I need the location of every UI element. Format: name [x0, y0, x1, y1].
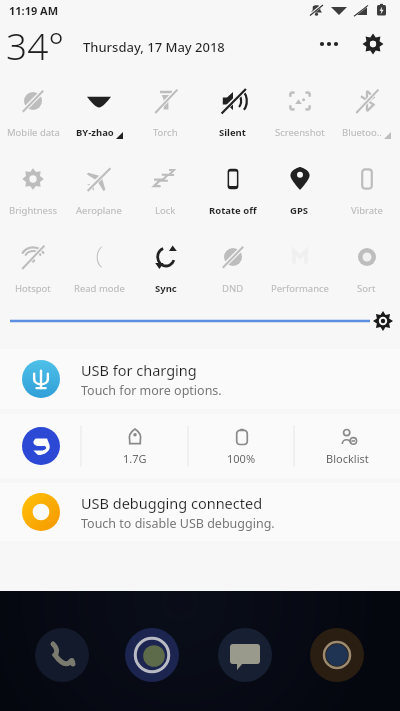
- staticText: Silent: [219, 126, 246, 139]
- button[interactable]: Brightness: [0, 152, 66, 230]
- button[interactable]: USB for charging: [0, 349, 400, 409]
- staticText: GPS: [290, 204, 309, 217]
- staticText: Lock: [155, 204, 176, 217]
- staticText: Hotspot: [15, 282, 51, 295]
- staticText: Torch: [153, 126, 178, 139]
- staticText: Sync: [155, 282, 177, 295]
- button[interactable]: Rotate off: [199, 152, 266, 230]
- button[interactable]: 1.7G: [0, 414, 400, 478]
- button[interactable]: DND: [199, 230, 266, 304]
- staticText: Vibrate: [351, 204, 383, 217]
- button[interactable]: Aeroplane: [66, 152, 132, 230]
- button[interactable]: More options: [312, 27, 346, 61]
- staticText: Rotate off: [209, 204, 257, 217]
- button[interactable]: Bluetoo..: [333, 74, 400, 152]
- staticText: USB for charging: [81, 360, 197, 380]
- button[interactable]: Torch: [132, 74, 199, 152]
- button[interactable]: Screenshot: [266, 74, 333, 152]
- staticText: Performance: [271, 282, 329, 295]
- staticText: Blocklist: [326, 451, 369, 466]
- staticText: USB debugging connected: [81, 493, 263, 513]
- button[interactable]: Sync: [132, 230, 199, 304]
- button[interactable]: Vibrate: [333, 152, 400, 230]
- button[interactable]: Lock: [132, 152, 199, 230]
- staticText: Screenshot: [275, 126, 325, 139]
- staticText: DND: [222, 282, 244, 295]
- staticText: Mobile data: [7, 126, 60, 139]
- button[interactable]: Read mode: [66, 230, 132, 304]
- button[interactable]: 1.7G: [81, 414, 188, 478]
- button[interactable]: USB debugging connected: [0, 483, 400, 541]
- button[interactable]: Settings: [354, 25, 392, 63]
- staticText: 100%: [227, 451, 256, 466]
- staticText: Read mode: [74, 282, 125, 295]
- button[interactable]: GPS: [266, 152, 333, 230]
- staticText: 11:19 AM: [9, 3, 59, 18]
- staticText: Thursday, 17 May 2018: [83, 38, 225, 56]
- staticText: Brightness: [9, 204, 58, 217]
- staticText: 34°: [6, 20, 65, 66]
- button[interactable]: Mobile data: [0, 74, 66, 152]
- staticText: 1.7G: [123, 451, 147, 466]
- staticText: Touch for more options.: [81, 382, 222, 399]
- button[interactable]: BY-zhao: [66, 74, 132, 152]
- staticText: Touch to disable USB debugging.: [81, 515, 275, 532]
- button[interactable]: Sort: [333, 230, 400, 304]
- button[interactable]: Blocklist: [294, 414, 400, 478]
- staticText: BY-zhao: [76, 126, 114, 139]
- button[interactable]: Performance: [266, 230, 333, 304]
- staticText: Aeroplane: [76, 204, 122, 217]
- button[interactable]: Brightness: [0, 304, 400, 338]
- button[interactable]: 100%: [188, 414, 294, 478]
- staticText: Sort: [357, 282, 376, 295]
- button[interactable]: Hotspot: [0, 230, 66, 304]
- staticText: Bluetoo..: [342, 126, 382, 139]
- button[interactable]: Silent: [199, 74, 266, 152]
